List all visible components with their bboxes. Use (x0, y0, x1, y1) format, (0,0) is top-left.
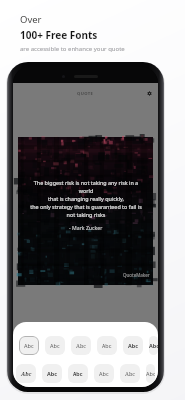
button[interactable]: Abc (19, 336, 39, 355)
staticText: Abc (146, 370, 155, 377)
staticText: Abc (24, 342, 34, 349)
staticText: Over (20, 13, 42, 26)
staticText: Abc (76, 342, 86, 349)
staticText: Abc (50, 342, 60, 349)
staticText: QUOTE (77, 91, 94, 97)
staticText: Abc (149, 342, 158, 349)
staticText: - Mark Zucker (69, 224, 103, 231)
staticText: 100+ Free Fonts (20, 28, 98, 42)
staticText: Abc (128, 342, 139, 349)
staticText: Abc (102, 342, 112, 349)
button[interactable]: Abc (42, 364, 62, 383)
button[interactable]: Abc (123, 336, 143, 355)
staticText: Abc (125, 370, 135, 377)
staticText: are accessible to enhance your quote (20, 45, 125, 53)
button[interactable]: Abc (45, 336, 65, 355)
button[interactable]: Abc (16, 364, 36, 383)
button[interactable]: Abc (149, 336, 158, 355)
staticText: Abc (21, 370, 32, 377)
staticText: Abc (73, 370, 83, 377)
button[interactable]: Abc (71, 336, 91, 355)
button[interactable]: Abc (120, 364, 140, 383)
button[interactable]: Abc (97, 336, 117, 355)
staticText: Abc (47, 370, 58, 377)
button[interactable]: Abc (94, 364, 114, 383)
staticText: Abc (99, 370, 109, 377)
staticText: The biggest risk is not taking any risk … (30, 179, 142, 219)
button[interactable]: Abc (146, 364, 155, 383)
button[interactable]: Settings (143, 87, 155, 99)
button[interactable]: Abc (68, 364, 88, 383)
staticText: QuoteMaker (123, 272, 150, 278)
